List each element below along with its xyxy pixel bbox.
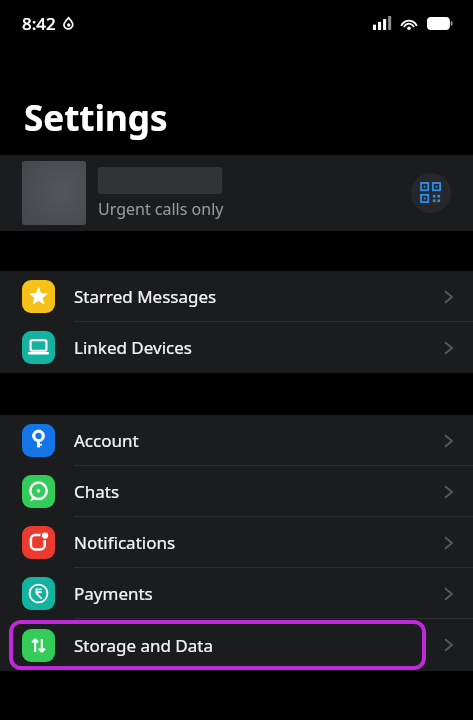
button[interactable]: QR code [411, 173, 451, 213]
button[interactable]: Linked Devices [0, 322, 473, 373]
button[interactable]: Payments [0, 568, 473, 619]
staticText: Chats [74, 480, 120, 503]
staticText: Starred Messages [74, 285, 217, 308]
staticText: Payments [74, 582, 153, 605]
button[interactable]: Chats [0, 466, 473, 517]
button[interactable]: Starred Messages [0, 271, 473, 322]
staticText: Storage and Data [74, 634, 213, 657]
button[interactable]: Urgent calls only [0, 155, 473, 231]
staticText: 8:42 [22, 12, 56, 35]
staticText: Linked Devices [74, 336, 192, 359]
staticText: Notifications [74, 531, 176, 554]
button[interactable]: Account [0, 415, 473, 466]
button[interactable]: Storage and Data [22, 619, 453, 671]
button[interactable]: Notifications [0, 517, 473, 568]
staticText: Account [74, 429, 139, 452]
staticText: Urgent calls only [98, 198, 224, 220]
staticText: Settings [24, 94, 168, 142]
